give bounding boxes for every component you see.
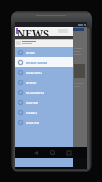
staticText: anan: [26, 50, 35, 55]
staticText: NEWS: [17, 27, 50, 36]
button[interactable]: wsaunuwaa: [15, 57, 73, 67]
button[interactable]: suaau: [15, 107, 73, 117]
button[interactable]: asuuna: [15, 117, 73, 127]
staticText: nuuvaanu: [26, 90, 44, 95]
staticText: wsaunuwaa: [26, 60, 48, 65]
button[interactable]: nuuvaanu: [15, 87, 73, 97]
button[interactable]: Back: [29, 147, 42, 158]
button[interactable]: anssu: [15, 77, 73, 87]
staticText: wunan: [26, 100, 39, 105]
button[interactable]: wunan: [15, 97, 73, 107]
staticText: usaunnu: [26, 70, 42, 75]
button[interactable]: anan: [15, 47, 73, 57]
button[interactable]: Recent apps: [62, 147, 75, 158]
staticText: anssu: [26, 80, 37, 85]
staticText: asuuna: [26, 120, 40, 125]
button[interactable]: Home: [46, 147, 59, 158]
staticText: suaau: [26, 110, 37, 115]
button[interactable]: usaunnu: [15, 67, 73, 77]
